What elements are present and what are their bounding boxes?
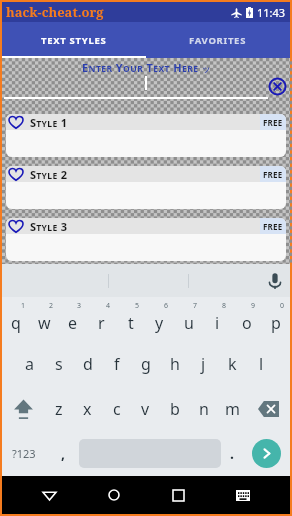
button[interactable]: .	[221, 431, 243, 476]
staticText: j	[201, 353, 206, 375]
button[interactable]: d	[73, 341, 102, 386]
staticText: m	[225, 398, 240, 420]
button[interactable]: 6	[145, 297, 174, 341]
button[interactable]: Recents	[161, 478, 195, 512]
staticText: r	[98, 312, 105, 334]
staticText: 3	[77, 301, 82, 311]
staticText: hack-cheat.org	[6, 3, 104, 21]
staticText: y	[155, 312, 164, 334]
button[interactable]: b	[160, 386, 189, 431]
button[interactable]: STYLE 1	[6, 114, 286, 157]
button[interactable]: h	[160, 341, 189, 386]
staticText: p	[271, 312, 281, 334]
staticText: FREE	[263, 221, 283, 232]
staticText: 5	[135, 301, 140, 311]
button[interactable]: Shift	[2, 386, 44, 431]
button[interactable]: Home	[97, 478, 131, 512]
button[interactable]: Keyboard	[226, 478, 260, 512]
staticText: e	[68, 312, 78, 334]
button[interactable]: j	[189, 341, 218, 386]
button[interactable]: n	[189, 386, 218, 431]
staticText: .	[230, 444, 234, 463]
button[interactable]: 7	[174, 297, 203, 341]
staticText: 0	[280, 301, 285, 311]
button[interactable]: 0	[261, 297, 290, 341]
staticText: w	[38, 312, 51, 334]
button[interactable]: a	[15, 341, 44, 386]
button[interactable]: ?123	[2, 431, 46, 476]
button[interactable]: FAVORITES	[146, 22, 290, 58]
staticText: 9	[251, 301, 256, 311]
button[interactable]: 3	[58, 297, 87, 341]
button[interactable]: Enter	[252, 439, 281, 468]
button[interactable]: 2	[30, 297, 58, 341]
staticText: STYLE 2	[30, 167, 68, 182]
staticText: z	[55, 398, 63, 420]
staticText: t	[128, 312, 134, 334]
staticText: b	[170, 398, 180, 420]
staticText: a	[25, 353, 34, 375]
staticText: s	[55, 353, 63, 375]
button[interactable]: STYLE 2	[6, 166, 286, 209]
button[interactable]: m	[218, 386, 247, 431]
button[interactable]: s	[44, 341, 73, 386]
button[interactable]: k	[218, 341, 247, 386]
button[interactable]: Backspace	[247, 386, 290, 431]
button[interactable]: Voice input	[269, 273, 281, 289]
button[interactable]: Back	[32, 478, 66, 512]
staticText: ,	[61, 444, 65, 463]
staticText: ?123	[12, 446, 36, 461]
staticText: 8	[222, 301, 227, 311]
button[interactable]: x	[73, 386, 102, 431]
staticText: n	[199, 398, 209, 420]
button[interactable]: l	[247, 341, 276, 386]
button[interactable]: 9	[232, 297, 261, 341]
staticText: 11:43	[257, 5, 286, 20]
staticText: d	[83, 353, 93, 375]
staticText: u	[184, 312, 194, 334]
button[interactable]: 8	[203, 297, 232, 341]
staticText: ENTER YOUR TEXT HERE ッ	[82, 60, 211, 75]
button[interactable]: 4	[87, 297, 116, 341]
staticText: c	[113, 398, 121, 420]
staticText: h	[170, 353, 180, 375]
staticText: 4	[106, 301, 111, 311]
staticText: k	[228, 353, 237, 375]
staticText: FREE	[263, 117, 283, 128]
button[interactable]: v	[131, 386, 160, 431]
button[interactable]: z	[44, 386, 73, 431]
staticText: 1	[21, 301, 26, 311]
staticText: x	[83, 398, 92, 420]
staticText: f	[114, 353, 120, 375]
staticText: FAVORITES	[189, 34, 247, 47]
staticText: o	[242, 312, 252, 334]
button[interactable]: 5	[116, 297, 145, 341]
staticText: STYLE 3	[30, 219, 68, 234]
staticText: i	[215, 312, 220, 334]
button[interactable]: TEXT STYLES	[2, 22, 146, 58]
staticText: l	[259, 353, 264, 375]
button[interactable]: ,	[46, 431, 79, 476]
button[interactable]: c	[102, 386, 131, 431]
staticText: g	[141, 353, 151, 375]
button[interactable]: Clear text	[268, 77, 287, 96]
button[interactable]: 1	[2, 297, 30, 341]
staticText: 6	[164, 301, 169, 311]
button[interactable]: g	[131, 341, 160, 386]
staticText: FREE	[263, 169, 283, 180]
staticText: v	[141, 398, 150, 420]
staticText: TEXT STYLES	[41, 34, 107, 47]
button[interactable]: STYLE 3	[6, 218, 286, 261]
staticText: q	[11, 312, 21, 334]
staticText: STYLE 1	[30, 115, 68, 130]
staticText: 2	[49, 301, 54, 311]
staticText: 7	[193, 301, 198, 311]
button[interactable]: f	[102, 341, 131, 386]
